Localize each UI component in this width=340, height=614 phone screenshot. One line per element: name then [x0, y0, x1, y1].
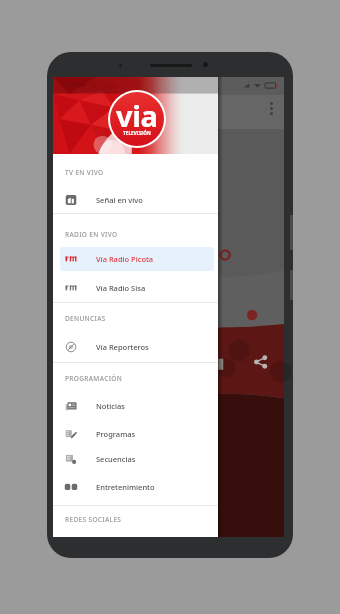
button[interactable]: Señal en vivo	[60, 188, 214, 212]
staticText: REDES SOCIALES	[65, 515, 122, 524]
button[interactable]: More options	[262, 99, 280, 117]
staticText: Secuencias	[96, 454, 136, 464]
button[interactable]: Entretenimiento	[60, 475, 214, 499]
staticText: TV EN VIVO	[65, 168, 104, 177]
staticText: Señal en vivo	[96, 195, 143, 205]
staticText: Vía Radio Sisa	[96, 283, 146, 293]
staticText: 7:06 AM	[63, 81, 86, 89]
staticText: Entretenimiento	[96, 482, 155, 492]
button[interactable]: Programas	[60, 422, 214, 446]
button[interactable]: Secuencias	[60, 447, 214, 471]
button[interactable]: Vía Radio Picota	[60, 247, 214, 271]
staticText: Noticias	[96, 401, 125, 411]
staticText: PROGRAMACIÓN	[65, 374, 123, 383]
staticText: Vía Reporteros	[96, 342, 149, 352]
button[interactable]: Vía Radio Sisa	[60, 276, 214, 300]
staticText: Programas	[96, 429, 136, 439]
button[interactable]: Vía Reporteros	[60, 335, 214, 359]
staticText: RADIO EN VIVO	[65, 230, 118, 239]
staticText: via	[116, 96, 158, 135]
staticText: DENUNCIAS	[65, 314, 106, 323]
staticText: Vía Radio Picota	[96, 254, 154, 264]
button[interactable]: Noticias	[60, 394, 214, 418]
staticText: TELEVISIÓN	[123, 130, 151, 136]
